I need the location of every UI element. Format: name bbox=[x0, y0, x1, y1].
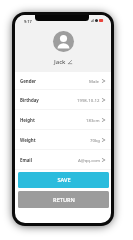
staticText: A@qq.com bbox=[78, 157, 100, 163]
staticText: 9:17 bbox=[24, 19, 32, 24]
staticText: RETURN bbox=[53, 196, 75, 204]
staticText: 1998-10-12 bbox=[77, 97, 100, 103]
button[interactable]: Birthday bbox=[15, 90, 111, 109]
staticText: Weight bbox=[20, 137, 36, 143]
staticText: Gender bbox=[20, 78, 37, 84]
button[interactable]: SAVE bbox=[18, 172, 109, 188]
staticText: Male bbox=[89, 78, 100, 84]
staticText: Email bbox=[20, 157, 32, 163]
staticText: SAVE bbox=[57, 176, 71, 184]
staticText: Jack bbox=[54, 58, 66, 66]
button[interactable]: Gender bbox=[15, 72, 111, 89]
button[interactable]: Weight bbox=[15, 130, 111, 149]
staticText: 70kg bbox=[90, 137, 100, 143]
staticText: Birthday bbox=[20, 97, 39, 103]
staticText: Height bbox=[20, 117, 35, 123]
other: Edit name bbox=[68, 60, 72, 64]
button[interactable]: RETURN bbox=[18, 191, 109, 208]
button[interactable]: Height bbox=[15, 110, 111, 129]
button[interactable]: Email bbox=[15, 150, 111, 169]
staticText: 183cm bbox=[86, 117, 100, 123]
